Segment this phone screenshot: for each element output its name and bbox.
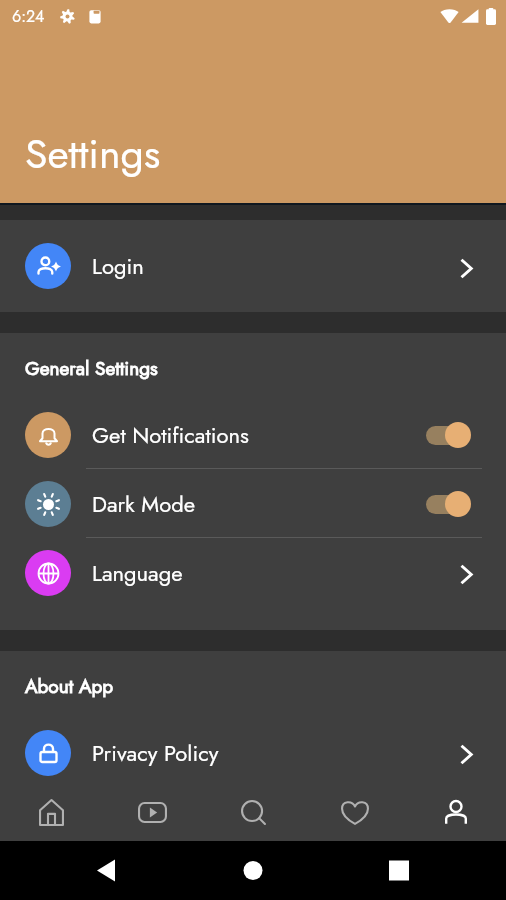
button[interactable]: Favourites xyxy=(304,784,405,841)
button[interactable]: Dark Mode xyxy=(0,469,506,538)
button[interactable]: Open xyxy=(447,258,473,279)
button[interactable]: Videos xyxy=(102,784,203,841)
staticText: Privacy Policy xyxy=(92,737,219,769)
button[interactable]: Toggle xyxy=(425,422,471,448)
staticText: Get Notifications xyxy=(92,419,249,451)
button[interactable]: Language xyxy=(0,538,506,607)
staticText: Login xyxy=(92,250,144,282)
button[interactable]: Privacy Policy xyxy=(0,718,506,787)
button[interactable]: Search xyxy=(203,784,304,841)
button[interactable]: Get Notifications xyxy=(0,400,506,469)
button[interactable]: Login xyxy=(0,220,506,312)
button[interactable]: Home xyxy=(0,784,102,841)
button[interactable]: Open xyxy=(447,744,473,765)
staticText: 6:24 xyxy=(12,5,45,28)
staticText: About App xyxy=(25,673,114,700)
button[interactable]: Profile xyxy=(405,784,506,841)
button[interactable]: Open xyxy=(447,564,473,585)
staticText: General Settings xyxy=(25,355,158,382)
staticText: Language xyxy=(92,557,183,589)
staticText: Settings xyxy=(25,124,161,183)
button[interactable]: Toggle xyxy=(425,491,471,517)
staticText: Dark Mode xyxy=(92,488,196,520)
